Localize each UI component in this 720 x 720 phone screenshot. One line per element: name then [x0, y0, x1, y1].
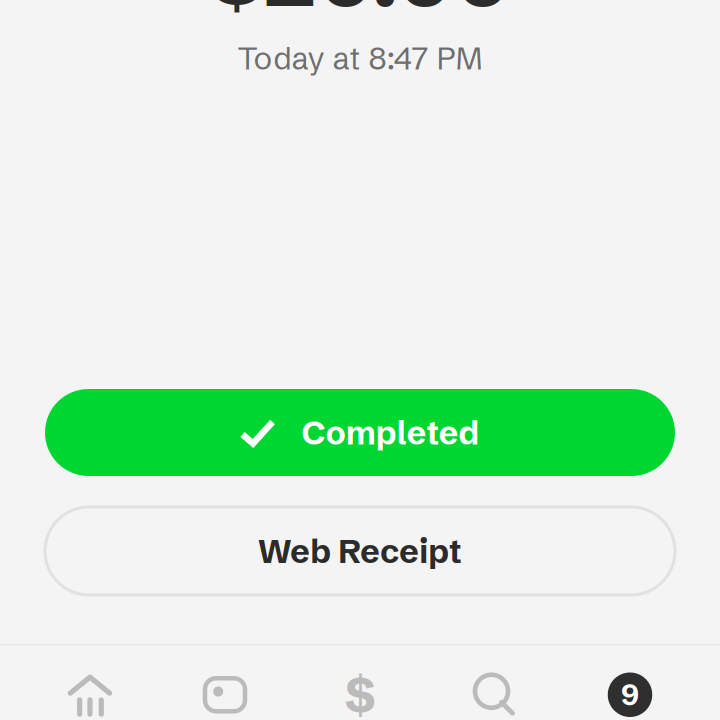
- button[interactable]: Search: [427, 673, 562, 717]
- button[interactable]: Activity: [562, 672, 697, 717]
- button[interactable]: Cash Card: [157, 673, 292, 717]
- staticText: Completed: [301, 412, 479, 453]
- staticText: Web Receipt: [258, 530, 462, 571]
- staticText: 9: [621, 677, 639, 713]
- staticText: $: [344, 663, 375, 720]
- staticText: Today at 8:47 PM: [237, 39, 482, 78]
- button[interactable]: Money: [22, 674, 157, 715]
- button[interactable]: Pay: [292, 673, 427, 717]
- staticText: $20.00: [209, 0, 510, 29]
- button[interactable]: Completed: [45, 389, 675, 476]
- button[interactable]: Web Receipt: [45, 507, 675, 595]
